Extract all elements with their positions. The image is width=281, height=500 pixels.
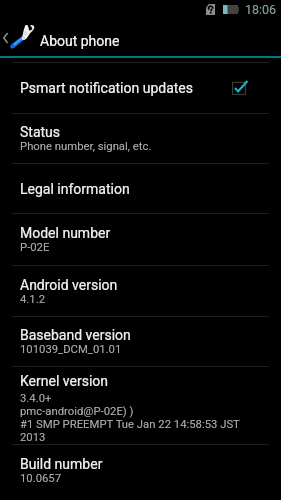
staticText: Status bbox=[20, 124, 61, 140]
button[interactable]: Legal information bbox=[0, 164, 281, 213]
button[interactable]: Model number bbox=[0, 214, 281, 265]
staticText: About phone bbox=[40, 33, 120, 49]
staticText: P-02E bbox=[20, 241, 50, 254]
staticText: Model number bbox=[20, 225, 111, 241]
button[interactable]: Psmart notification updates bbox=[0, 63, 281, 113]
staticText: 3.4.0+ bbox=[20, 392, 52, 405]
staticText: Legal information bbox=[20, 181, 130, 197]
staticText: #1 SMP PREEMPT Tue Jan 22 14:58:53 JST bbox=[20, 418, 240, 431]
staticText: Android version bbox=[20, 277, 118, 293]
button[interactable]: Kernel version bbox=[0, 367, 281, 444]
button[interactable]: Android version bbox=[0, 266, 281, 316]
staticText: 10.0657 bbox=[20, 472, 62, 485]
staticText: Baseband version bbox=[20, 327, 131, 343]
staticText: pmc-android@P-02E) ) bbox=[20, 405, 134, 418]
staticText: 18:06 bbox=[245, 2, 277, 17]
staticText: Psmart notification updates bbox=[20, 80, 193, 96]
staticText: 2013 bbox=[20, 431, 46, 444]
button[interactable]: Build number bbox=[0, 445, 281, 495]
staticText: Phone number, signal, etc. bbox=[20, 140, 152, 153]
staticText: 4.1.2 bbox=[20, 293, 46, 306]
staticText: Build number bbox=[20, 456, 103, 472]
button[interactable]: Baseband version bbox=[0, 317, 281, 366]
button[interactable]: Navigate up, About phone bbox=[0, 18, 281, 56]
staticText: Kernel version bbox=[20, 373, 109, 389]
button[interactable]: Status bbox=[0, 114, 281, 163]
staticText: 101039_DCM_01.01 bbox=[20, 343, 122, 356]
